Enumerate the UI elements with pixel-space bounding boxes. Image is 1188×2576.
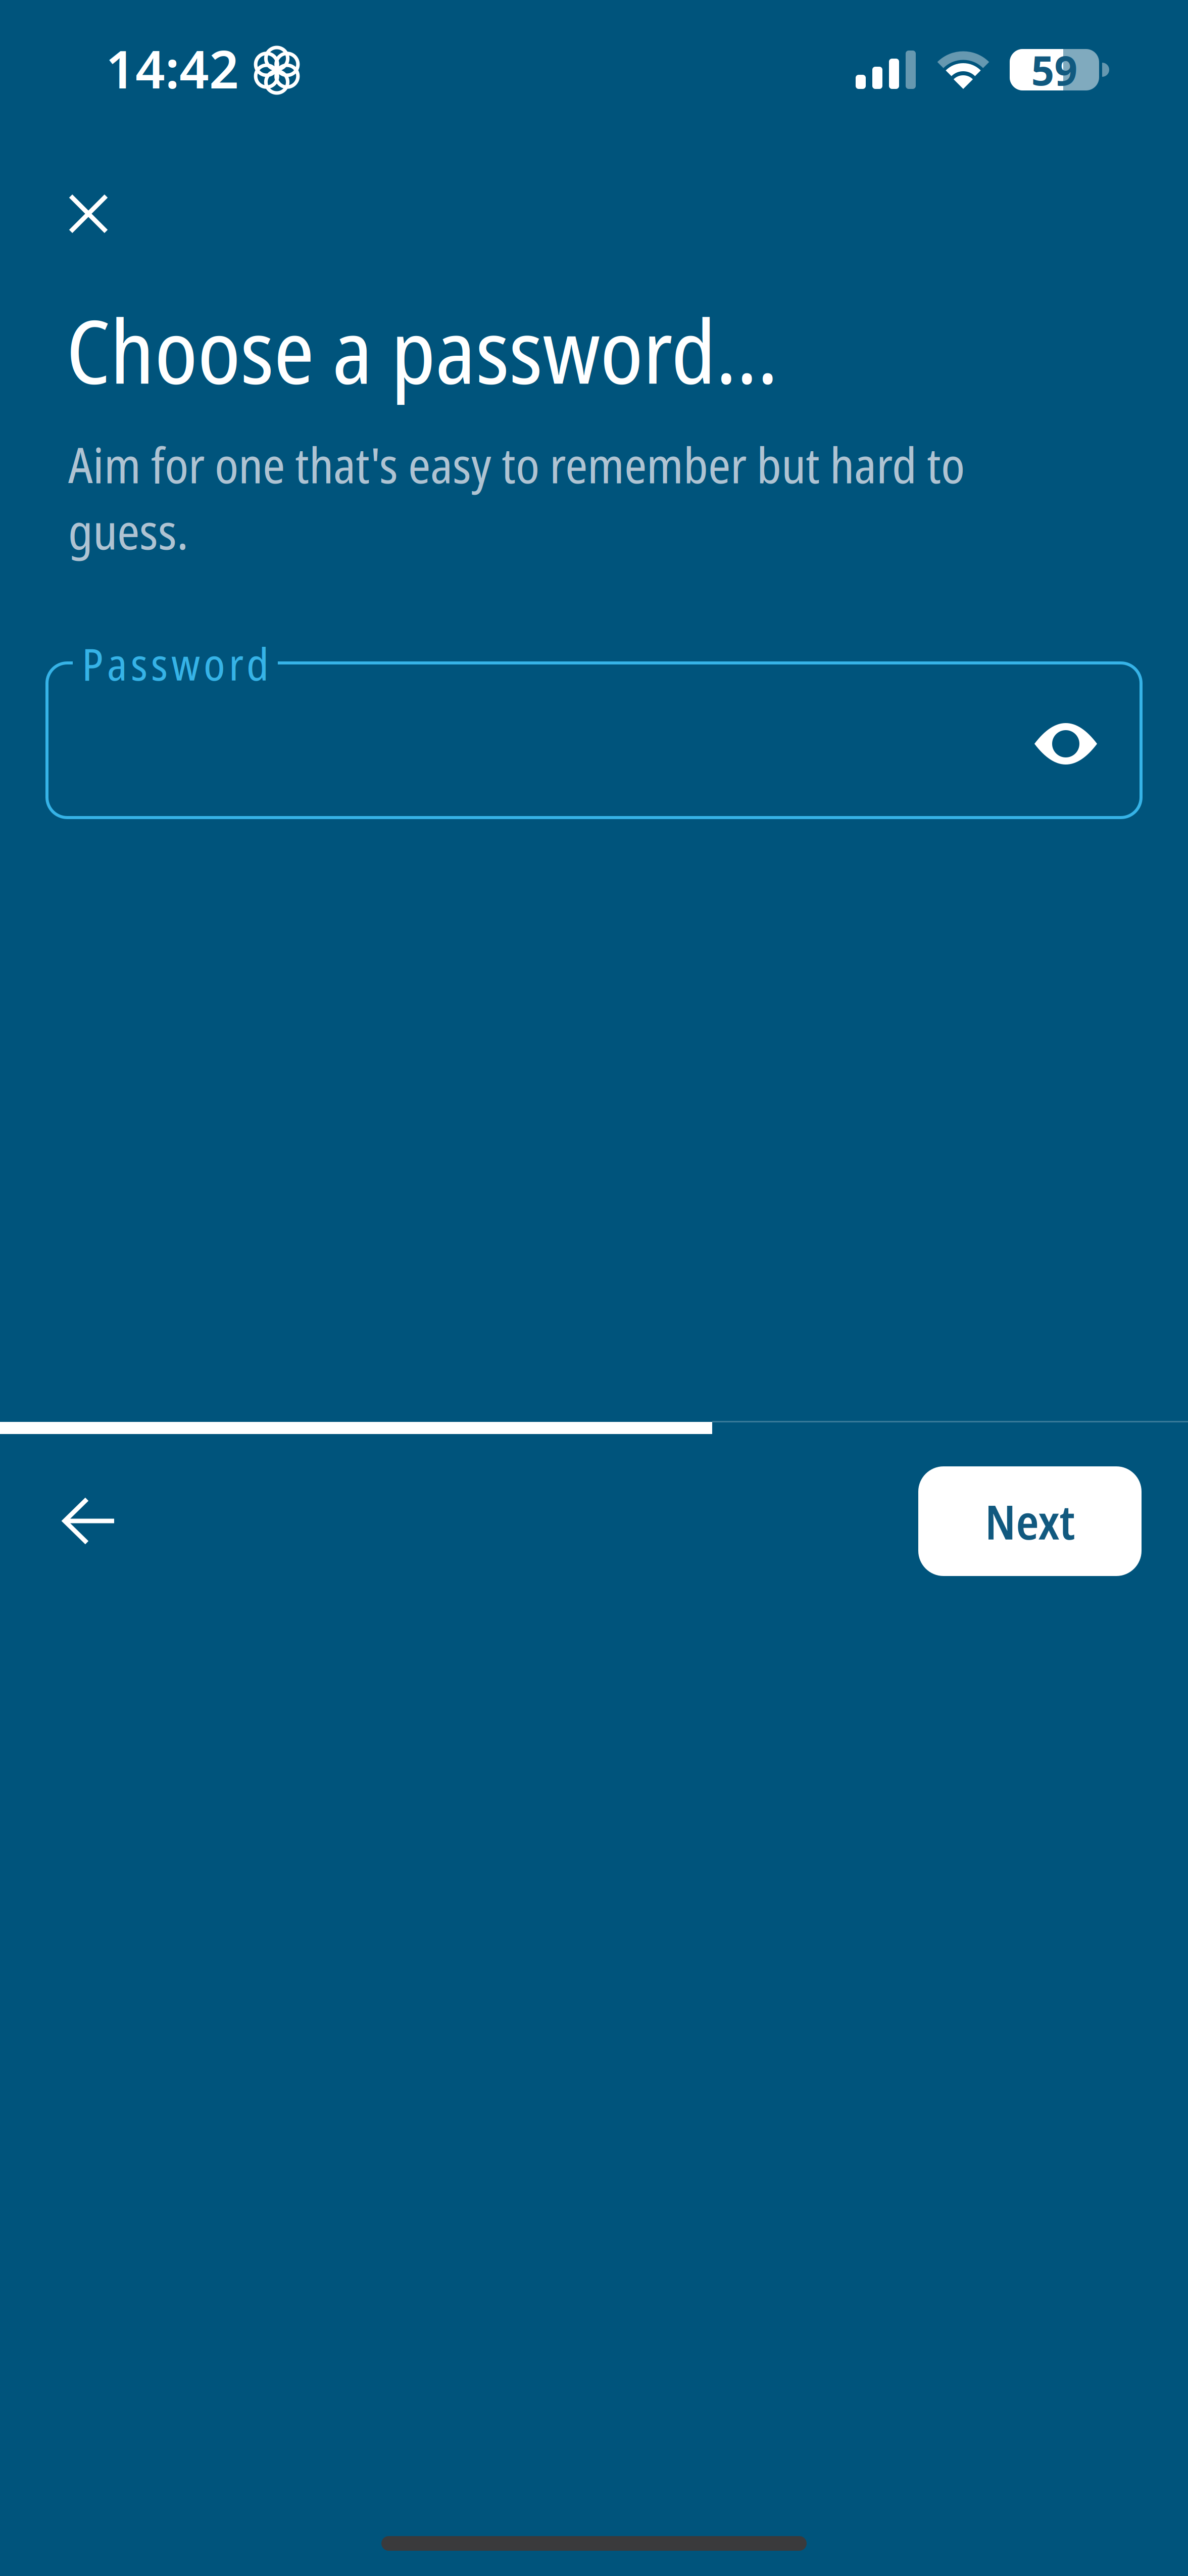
button[interactable]: Next bbox=[918, 1466, 1142, 1576]
button[interactable]: Back bbox=[34, 1475, 145, 1566]
staticText: Password bbox=[82, 634, 269, 693]
staticText: Choose a password... bbox=[66, 290, 778, 409]
staticText: Next bbox=[985, 1489, 1075, 1553]
staticText: Aim for one that's easy to remember but … bbox=[68, 432, 965, 564]
button[interactable]: Show password bbox=[1015, 703, 1116, 784]
staticText: 59 bbox=[1031, 43, 1078, 97]
button[interactable]: Close bbox=[43, 168, 134, 259]
staticText: 14:42 bbox=[106, 34, 239, 103]
